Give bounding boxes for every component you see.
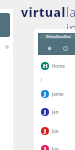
button[interactable]: Favourites bbox=[47, 46, 52, 51]
staticText: J bbox=[44, 145, 46, 150]
staticText: VirtualLandline bbox=[46, 34, 71, 39]
staticText: Home bbox=[52, 63, 65, 69]
button[interactable]: J bbox=[41, 141, 75, 150]
staticText: J bbox=[44, 108, 46, 116]
staticText: virtual bbox=[21, 4, 66, 20]
staticText: J bbox=[41, 77, 43, 82]
staticText: Jamie bbox=[52, 91, 64, 97]
staticText: landline bbox=[66, 4, 75, 36]
button[interactable]: H bbox=[41, 58, 75, 74]
staticText: Jon bbox=[52, 146, 59, 150]
staticText: J bbox=[44, 90, 46, 98]
button[interactable]: J bbox=[41, 86, 75, 102]
staticText: J bbox=[44, 127, 46, 135]
button[interactable]: J bbox=[41, 104, 75, 120]
button[interactable]: J bbox=[41, 123, 75, 139]
staticText: H bbox=[43, 62, 48, 70]
button[interactable]: Info bbox=[63, 46, 68, 51]
staticText: Jen bbox=[52, 109, 59, 115]
staticText: Joe bbox=[52, 128, 59, 134]
